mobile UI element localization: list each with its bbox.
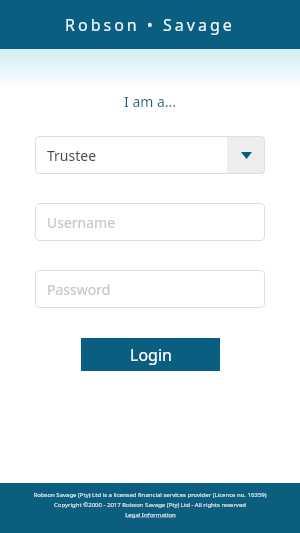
- staticText: Trustee: [47, 146, 97, 165]
- button[interactable]: Legal Information: [125, 511, 176, 519]
- staticText: Username: [47, 213, 116, 232]
- button[interactable]: Password: [35, 270, 265, 308]
- other: Open dropdown: [227, 136, 265, 174]
- staticText: Password: [47, 280, 111, 299]
- staticText: Copyright ©2000 - 2017 Robson Savage (Pt…: [0, 501, 300, 509]
- staticText: I am a...: [124, 92, 177, 111]
- button[interactable]: Login: [81, 338, 220, 371]
- staticText: Robson • Savage: [65, 14, 235, 36]
- staticText: Login: [130, 344, 172, 366]
- button[interactable]: Trustee: [35, 136, 265, 174]
- staticText: Robson Savage (Pty) Ltd is a licensed fi…: [0, 491, 300, 499]
- button[interactable]: Username: [35, 203, 265, 241]
